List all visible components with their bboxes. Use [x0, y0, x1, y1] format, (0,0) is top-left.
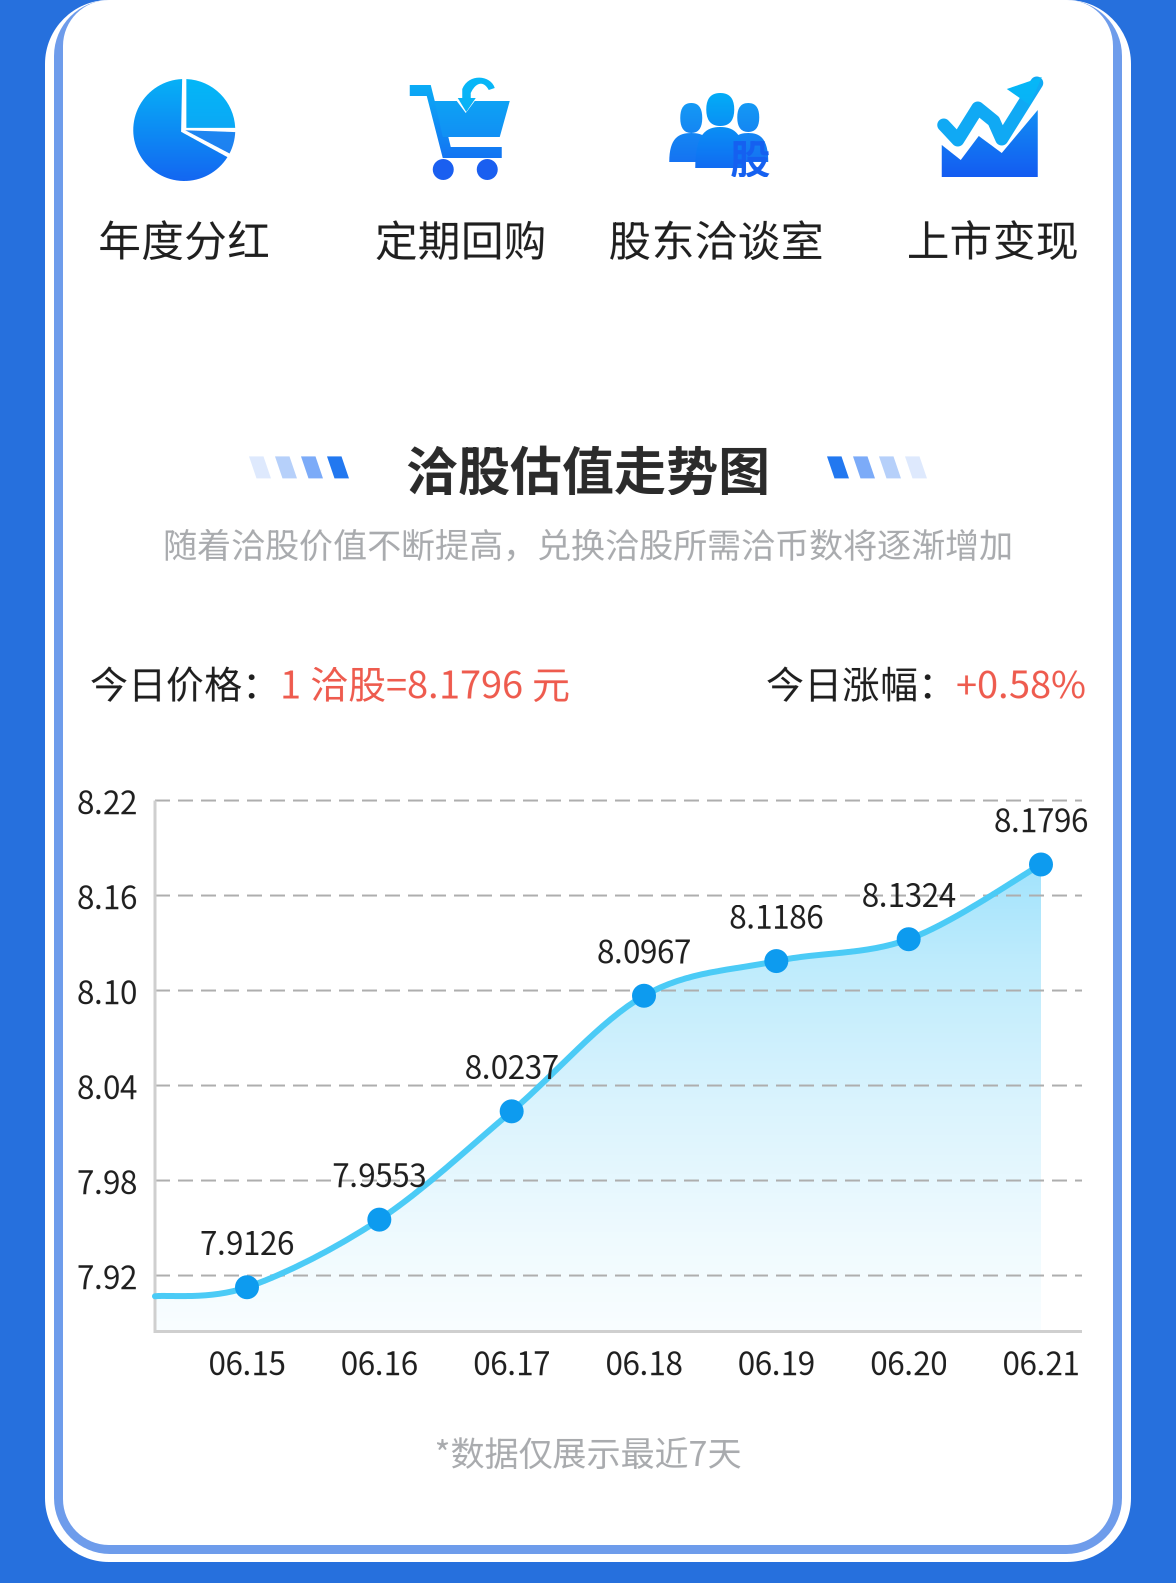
staticText: 06.17: [473, 1339, 550, 1384]
staticText: 8.1324: [862, 870, 956, 916]
staticText: 8.0237: [465, 1043, 559, 1088]
staticText: 8.0967: [597, 927, 691, 972]
button[interactable]: 股: [588, 77, 850, 269]
staticText: 8.04: [77, 1063, 137, 1108]
staticText: 7.9553: [332, 1151, 426, 1196]
staticText: 8.1796: [994, 796, 1088, 841]
staticText: 06.21: [1002, 1339, 1079, 1384]
staticText: 股: [730, 127, 770, 185]
staticText: 7.98: [77, 1158, 137, 1203]
staticText: *数据仅展示最近7天: [434, 1426, 741, 1476]
staticText: 06.19: [738, 1339, 815, 1384]
staticText: 7.9126: [200, 1219, 294, 1264]
button[interactable]: 定期回购: [325, 77, 588, 269]
staticText: 今日涨幅：: [766, 654, 956, 709]
staticText: 定期回购: [375, 207, 547, 269]
staticText: 今日价格：: [90, 654, 280, 709]
staticText: 8.10: [77, 968, 137, 1013]
staticText: 随着洽股价值不断提高，兑换洽股所需洽币数将逐渐增加: [163, 518, 1013, 567]
staticText: 8.22: [77, 778, 137, 823]
button[interactable]: 上市变现: [850, 77, 1113, 269]
staticText: 年度分红: [98, 207, 270, 269]
staticText: 8.16: [77, 873, 137, 918]
staticText: 06.15: [208, 1339, 285, 1384]
staticText: 06.16: [341, 1339, 418, 1384]
staticText: 洽股估值走势图: [406, 430, 770, 505]
staticText: 7.92: [77, 1253, 137, 1298]
staticText: +0.58%: [956, 654, 1086, 709]
staticText: 股东洽谈室: [609, 207, 824, 269]
staticText: 06.18: [605, 1339, 682, 1384]
staticText: 1 洽股=8.1796 元: [280, 654, 570, 709]
staticText: 8.1186: [729, 892, 823, 938]
button[interactable]: 年度分红: [63, 77, 325, 269]
staticText: 06.20: [870, 1339, 947, 1384]
staticText: 上市变现: [907, 207, 1079, 269]
